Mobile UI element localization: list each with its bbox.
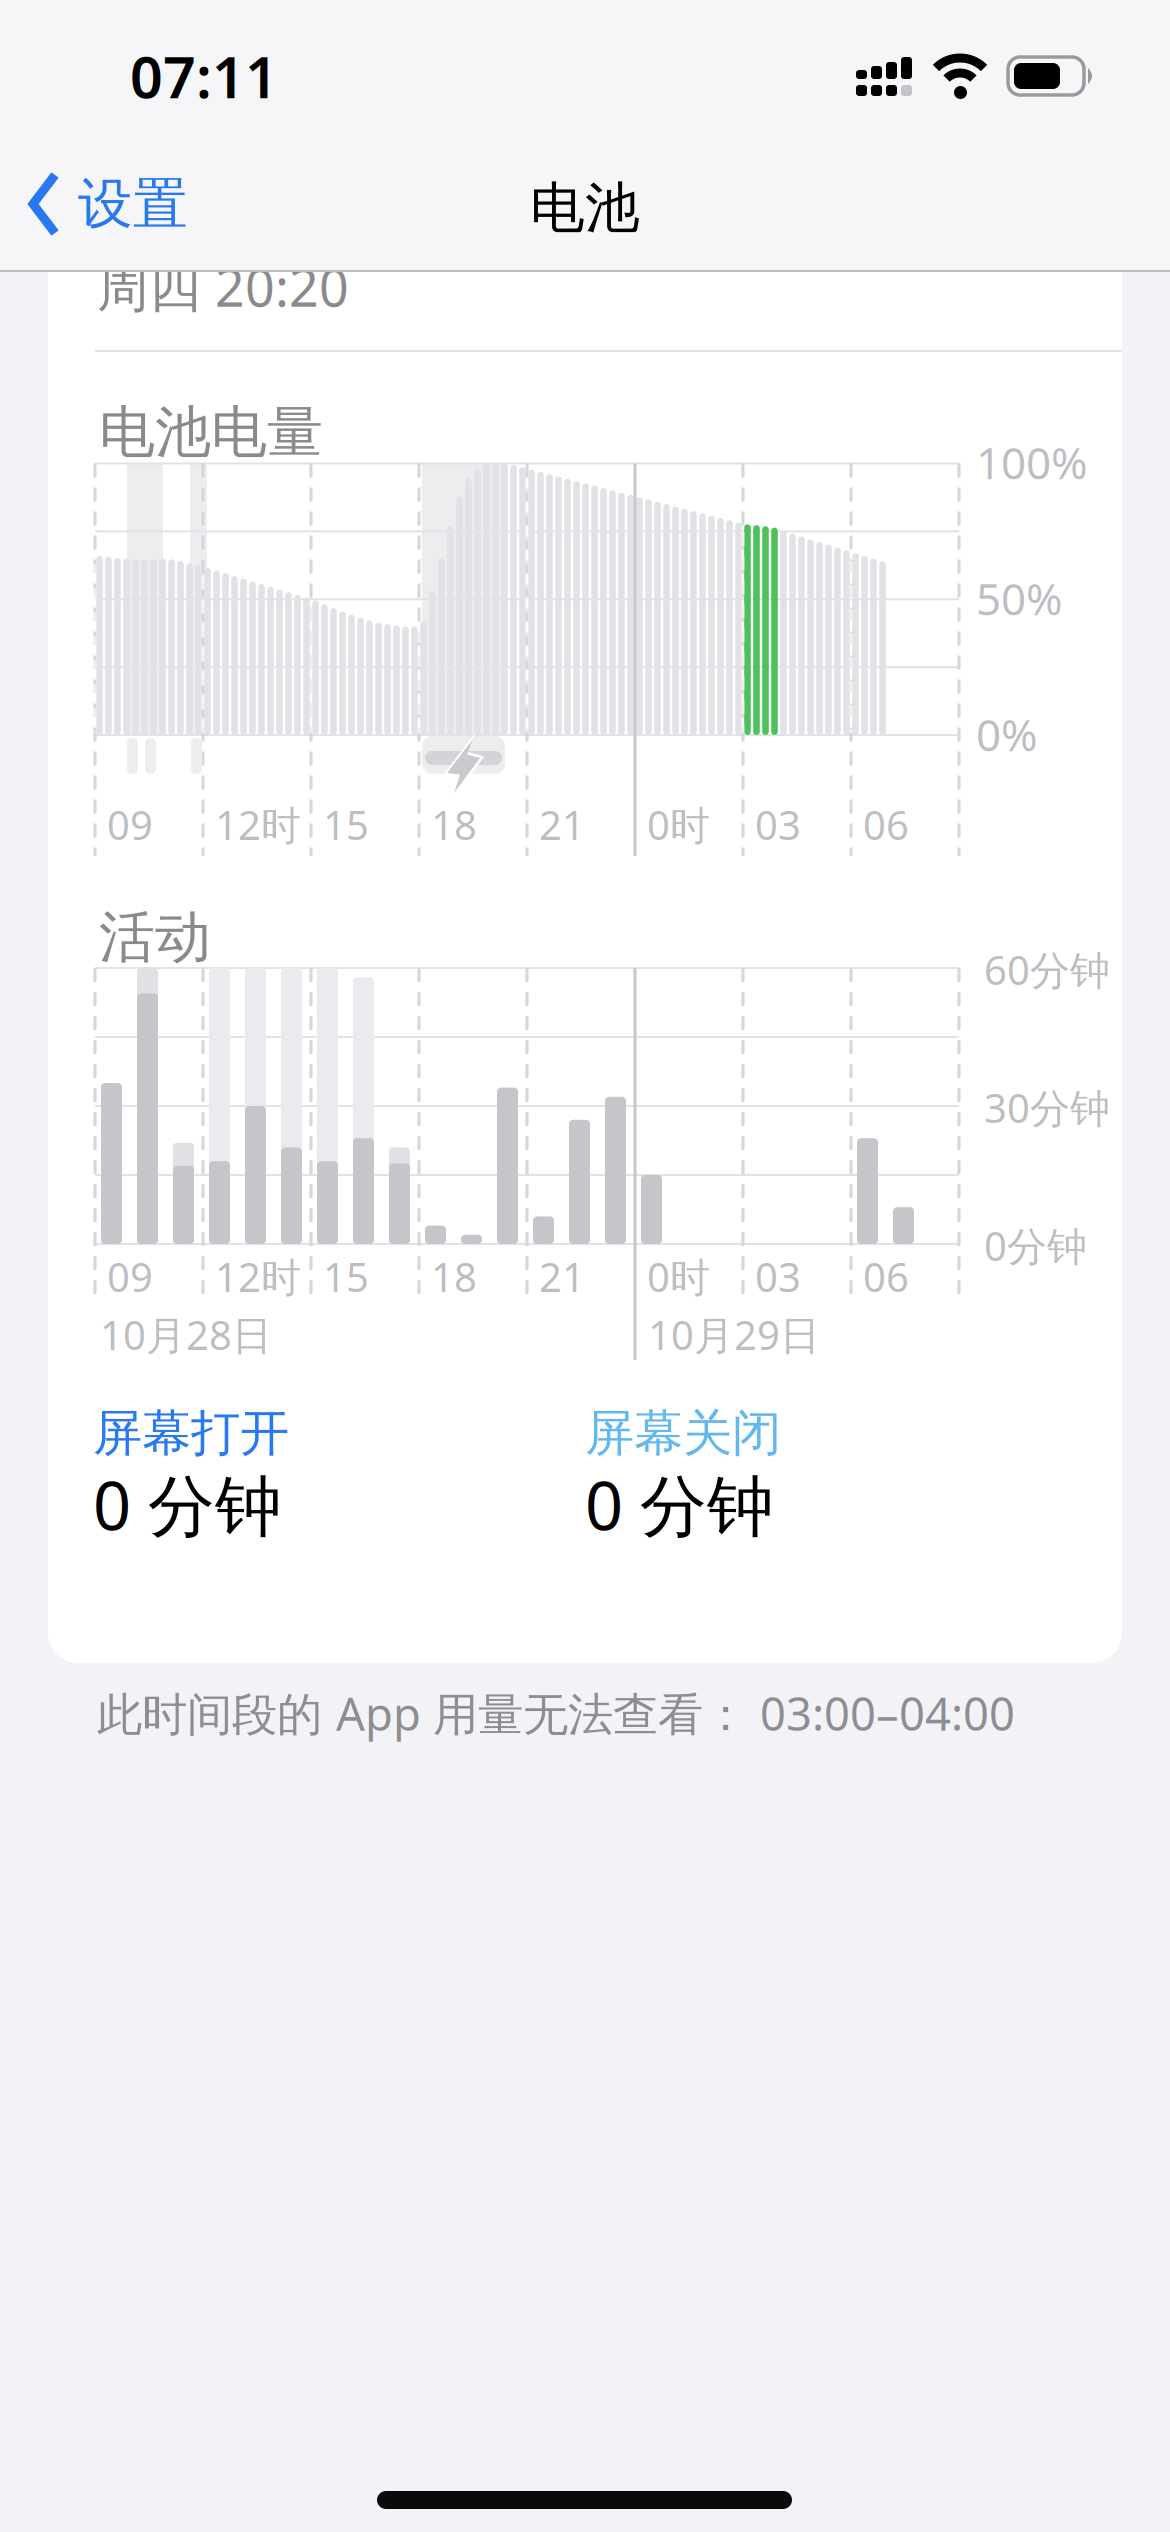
staticText: 07:11 <box>130 38 278 114</box>
staticText: 电池 <box>530 174 640 241</box>
button[interactable]: 返回设置 <box>28 170 188 238</box>
staticText: 03 <box>755 798 801 851</box>
staticText: 屏幕关闭 <box>585 1403 781 1464</box>
staticText: 0 分钟 <box>585 1460 774 1548</box>
staticText: 10月28日 <box>100 1308 272 1361</box>
staticText: 09 <box>107 1250 153 1303</box>
staticText: 电池电量 <box>99 398 323 467</box>
staticText: 21 <box>539 798 585 851</box>
staticText: 100% <box>976 433 1088 491</box>
staticText: 此时间段的 App 用量无法查看： 03:00–04:00 <box>97 1683 1015 1743</box>
staticText: 15 <box>323 1250 369 1303</box>
staticText: 活动 <box>99 903 211 972</box>
staticText: 09 <box>107 798 153 851</box>
staticText: 10月29日 <box>648 1308 820 1361</box>
staticText: 15 <box>323 798 369 851</box>
button[interactable]: 屏幕关闭 <box>585 1403 781 1464</box>
staticText: 周四 20:20 <box>97 252 349 321</box>
staticText: 18 <box>431 1250 477 1303</box>
staticText: 12时 <box>215 798 301 851</box>
staticText: 12时 <box>215 1250 301 1303</box>
staticText: 03 <box>755 1250 801 1303</box>
staticText: 60分钟 <box>984 943 1110 996</box>
staticText: 0时 <box>647 798 710 851</box>
staticText: 设置 <box>78 170 188 237</box>
staticText: 0分钟 <box>984 1219 1087 1272</box>
staticText: 0时 <box>647 1250 710 1303</box>
staticText: 屏幕打开 <box>93 1403 289 1464</box>
staticText: 0% <box>976 705 1038 763</box>
staticText: 06 <box>863 798 909 851</box>
staticText: 0 分钟 <box>93 1460 282 1548</box>
staticText: 30分钟 <box>984 1081 1110 1134</box>
button[interactable]: 屏幕打开 <box>93 1403 289 1464</box>
staticText: 18 <box>431 798 477 851</box>
staticText: 21 <box>539 1250 585 1303</box>
staticText: 50% <box>976 569 1063 627</box>
staticText: 06 <box>863 1250 909 1303</box>
